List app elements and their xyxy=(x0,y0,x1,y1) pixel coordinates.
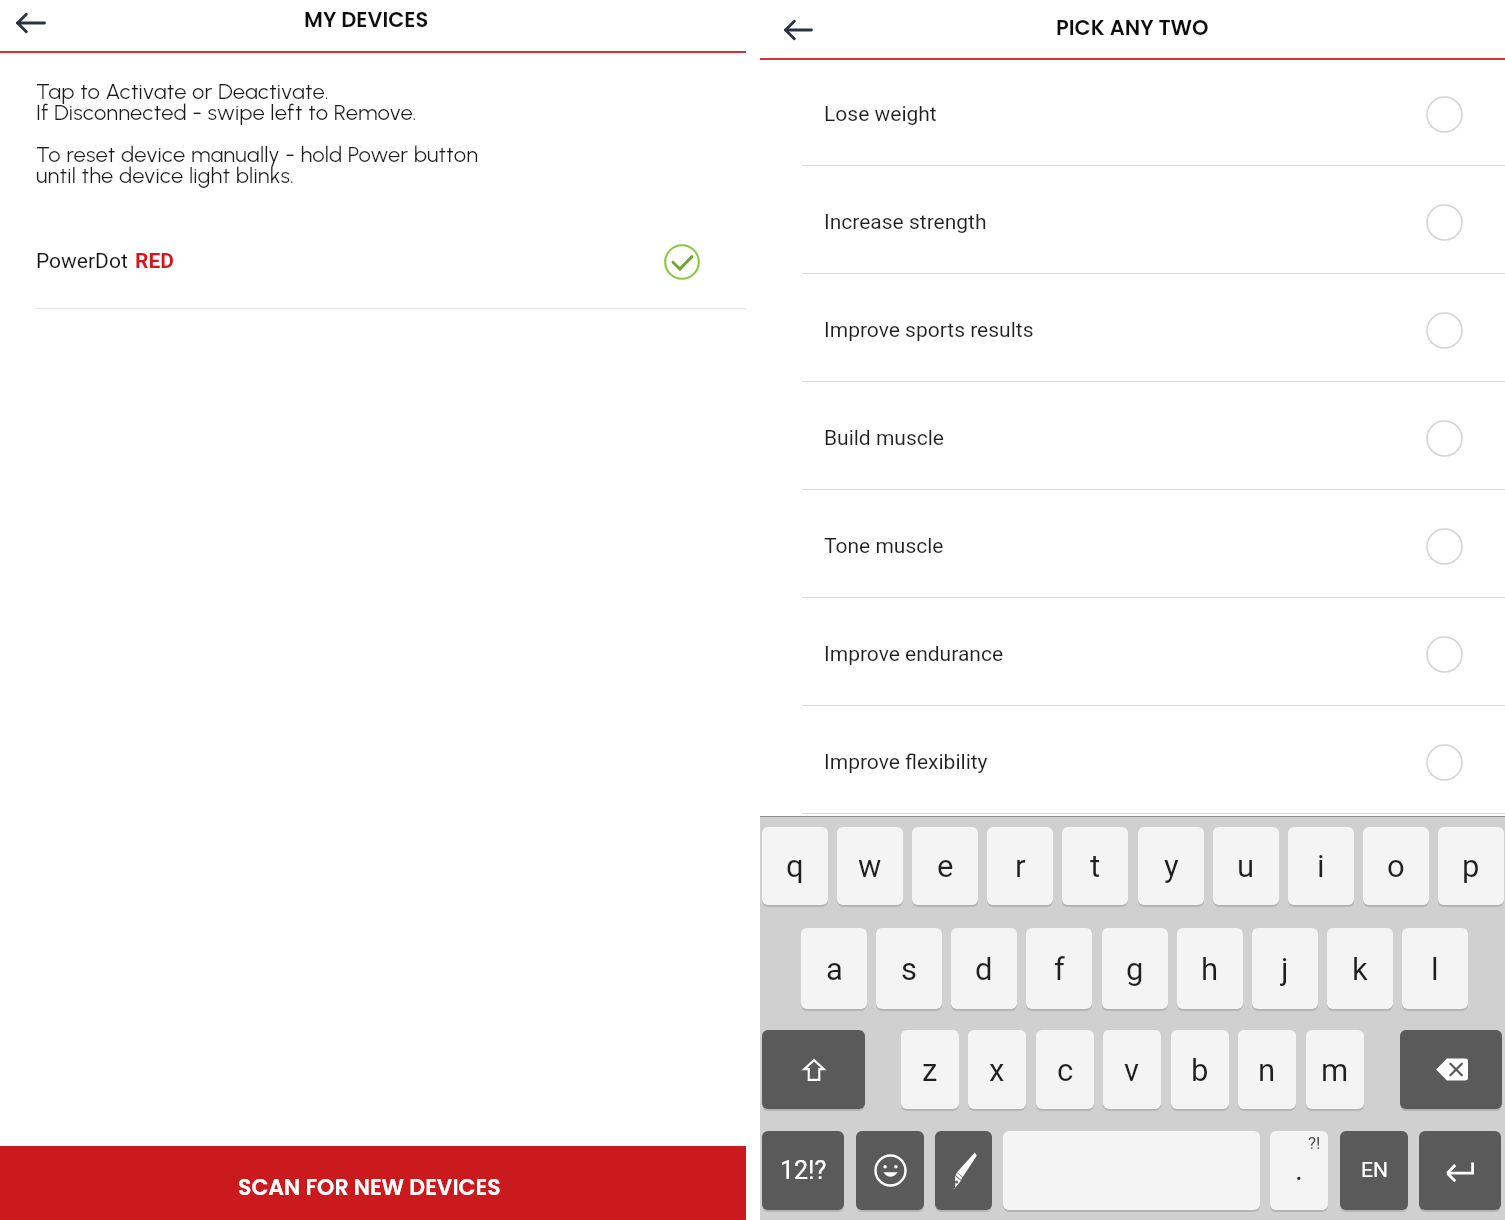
staticText: i xyxy=(1317,848,1325,884)
staticText: y xyxy=(1164,848,1179,884)
staticText: j xyxy=(1281,951,1289,987)
staticText: Build muscle xyxy=(824,426,944,451)
staticText: . xyxy=(1295,1152,1303,1187)
button[interactable]: r xyxy=(987,827,1053,905)
staticText: e xyxy=(937,848,954,884)
staticText: f xyxy=(1054,951,1065,987)
button[interactable]: Increase strength xyxy=(760,168,1505,276)
button[interactable]: h xyxy=(1177,928,1243,1009)
button[interactable]: Back xyxy=(9,0,53,44)
button[interactable]: Enter xyxy=(1419,1131,1501,1210)
staticText: q xyxy=(786,848,804,884)
button[interactable]: Back xyxy=(776,8,820,52)
staticText: z xyxy=(922,1052,938,1088)
staticText: k xyxy=(1352,951,1368,987)
button[interactable]: t xyxy=(1062,827,1128,905)
button[interactable]: Backspace xyxy=(1400,1030,1502,1109)
staticText: ?! xyxy=(1308,1133,1321,1153)
button[interactable]: d xyxy=(951,928,1017,1009)
button[interactable]: f xyxy=(1026,928,1092,1009)
staticText: RED xyxy=(135,249,174,274)
staticText: Tone muscle xyxy=(824,534,944,559)
button[interactable]: 12!? xyxy=(762,1131,844,1210)
button[interactable]: b xyxy=(1171,1030,1229,1109)
staticText: Improve endurance xyxy=(824,642,1004,667)
button[interactable]: j xyxy=(1252,928,1318,1009)
button[interactable]: s xyxy=(876,928,942,1009)
button[interactable]: Improve sports results xyxy=(760,276,1505,384)
staticText: g xyxy=(1126,951,1144,987)
button[interactable]: SCAN FOR NEW DEVICES xyxy=(0,1146,746,1220)
button[interactable]: u xyxy=(1213,827,1279,905)
staticText: x xyxy=(989,1052,1005,1088)
button[interactable]: Tone muscle xyxy=(760,492,1505,600)
button[interactable]: EN xyxy=(1340,1131,1408,1210)
button[interactable]: c xyxy=(1036,1030,1094,1109)
button[interactable]: Emoji xyxy=(856,1131,924,1210)
button[interactable]: z xyxy=(901,1030,959,1109)
button[interactable]: v xyxy=(1103,1030,1161,1109)
staticText: Increase strength xyxy=(824,210,987,235)
staticText: n xyxy=(1258,1052,1276,1088)
button[interactable]: Shift xyxy=(762,1030,865,1109)
staticText: u xyxy=(1237,848,1255,884)
staticText: m xyxy=(1321,1052,1349,1088)
staticText: w xyxy=(858,848,882,884)
staticText: o xyxy=(1387,848,1405,884)
button[interactable]: l xyxy=(1402,928,1468,1009)
staticText: SCAN FOR NEW DEVICES xyxy=(238,1172,501,1203)
staticText: t xyxy=(1090,848,1101,884)
button[interactable]: Lose weight xyxy=(760,60,1505,168)
staticText: Improve sports results xyxy=(824,318,1034,343)
button[interactable]: m xyxy=(1306,1030,1364,1109)
staticText: p xyxy=(1462,848,1480,884)
staticText: l xyxy=(1431,951,1439,987)
button[interactable]: Period xyxy=(1270,1131,1328,1210)
staticText: b xyxy=(1191,1052,1209,1088)
button[interactable]: PowerDot xyxy=(0,236,746,287)
staticText: PICK ANY TWO xyxy=(1056,13,1209,42)
button[interactable]: Improve endurance xyxy=(760,600,1505,708)
staticText: s xyxy=(901,951,917,987)
staticText: 12!? xyxy=(780,1156,827,1185)
staticText: d xyxy=(975,951,993,987)
staticText: c xyxy=(1057,1052,1074,1088)
staticText: Improve flexibility xyxy=(824,750,988,775)
button[interactable]: w xyxy=(837,827,903,905)
button[interactable]: i xyxy=(1288,827,1354,905)
button[interactable]: q xyxy=(762,827,828,905)
button[interactable]: n xyxy=(1238,1030,1296,1109)
button[interactable]: a xyxy=(801,928,867,1009)
button[interactable]: y xyxy=(1138,827,1204,905)
staticText: v xyxy=(1124,1052,1140,1088)
button[interactable]: Handwriting xyxy=(935,1131,992,1210)
button[interactable]: p xyxy=(1438,827,1504,905)
button[interactable]: o xyxy=(1363,827,1429,905)
button[interactable]: g xyxy=(1102,928,1168,1009)
staticText: Tap to Activate or Deactivate. If Discon… xyxy=(36,78,417,125)
button[interactable]: e xyxy=(912,827,978,905)
button[interactable]: k xyxy=(1327,928,1393,1009)
button[interactable]: Build muscle xyxy=(760,384,1505,492)
staticText: To reset device manually - hold Power bu… xyxy=(36,141,479,188)
staticText: Lose weight xyxy=(824,102,937,127)
button[interactable]: Improve flexibility xyxy=(760,708,1505,816)
staticText: r xyxy=(1015,848,1026,884)
button[interactable]: x xyxy=(968,1030,1026,1109)
staticText: EN xyxy=(1361,1158,1388,1183)
staticText: a xyxy=(826,951,843,987)
staticText: PowerDot xyxy=(36,249,128,274)
staticText: h xyxy=(1201,951,1219,987)
staticText: MY DEVICES xyxy=(304,5,429,34)
